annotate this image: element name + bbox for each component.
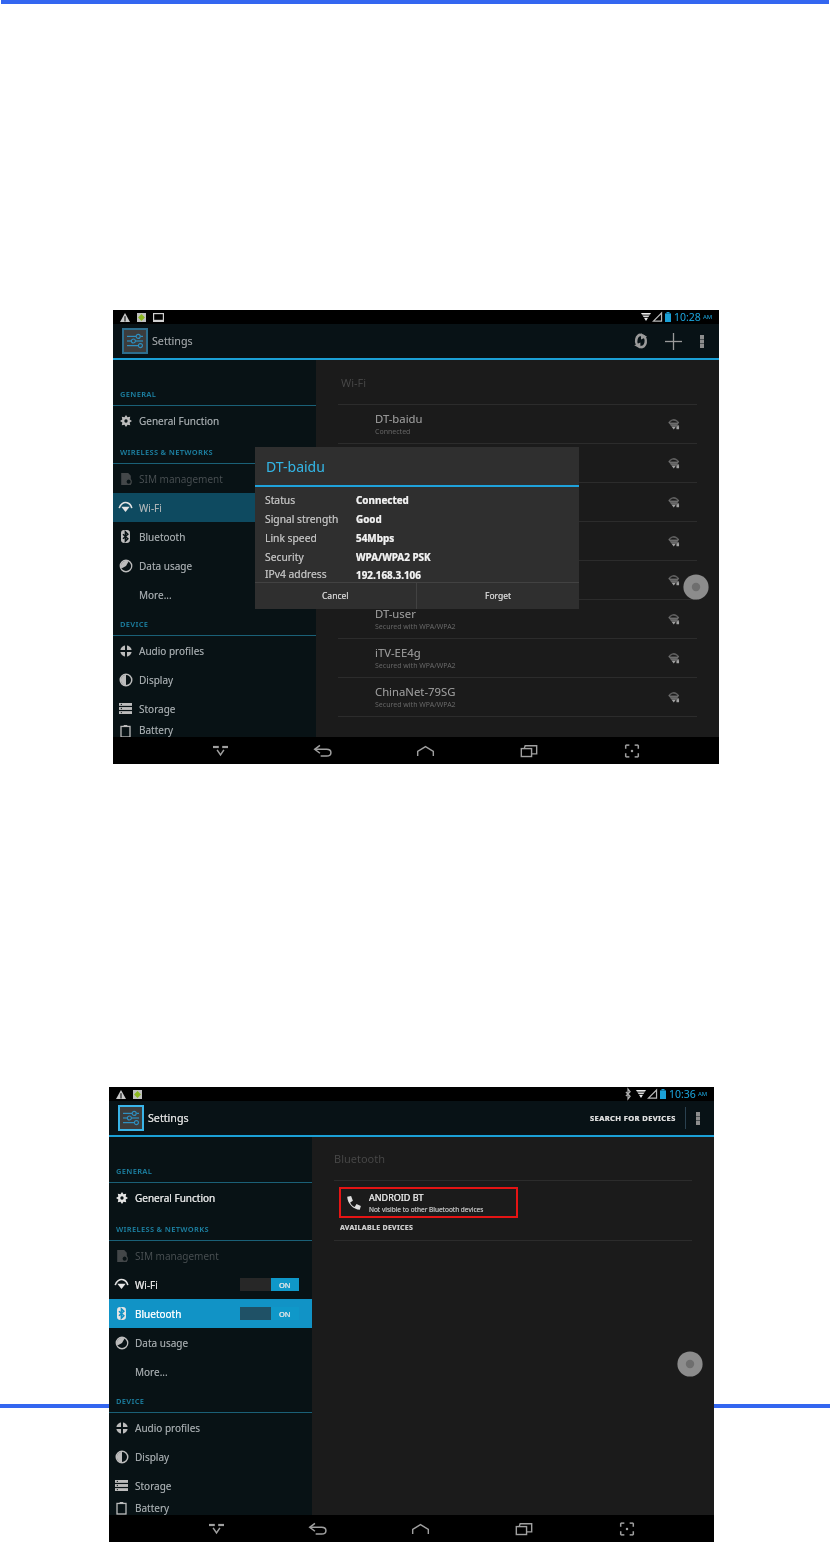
button[interactable]: Battery bbox=[109, 1500, 312, 1515]
staticText: Settings bbox=[152, 334, 193, 349]
button[interactable]: TP-LINK_5E2A bbox=[316, 483, 719, 521]
button[interactable]: ON bbox=[240, 1278, 299, 1291]
staticText: Good bbox=[356, 512, 382, 525]
staticText: ANDROID BT bbox=[369, 1191, 424, 1203]
staticText: Audio profiles bbox=[139, 644, 205, 658]
staticText: Connected bbox=[375, 427, 411, 437]
button[interactable]: Audio profiles bbox=[109, 1413, 312, 1442]
button[interactable]: DT-baidu bbox=[316, 405, 719, 443]
staticText: SEARCH FOR DEVICES bbox=[590, 1113, 676, 1123]
staticText: Wi-Fi bbox=[139, 501, 162, 515]
staticText: AM bbox=[703, 313, 713, 321]
staticText: ChinaNet-EE4g bbox=[375, 567, 454, 582]
staticText: ON bbox=[279, 1309, 291, 1319]
staticText: WPA/WPA2 PSK bbox=[356, 550, 431, 563]
staticText: Signal strength bbox=[265, 512, 339, 526]
staticText: 10:28 bbox=[674, 310, 701, 324]
staticText: 192.168.3.106 bbox=[356, 568, 421, 581]
button[interactable]: Back bbox=[271, 737, 374, 764]
staticText: Bluetooth bbox=[334, 1151, 386, 1166]
staticText: Data usage bbox=[135, 1336, 189, 1350]
button[interactable]: iTV-EE4g bbox=[316, 639, 719, 677]
button[interactable]: Add network bbox=[656, 324, 690, 358]
button[interactable]: ON bbox=[240, 1307, 299, 1320]
button[interactable]: ANDROID BT bbox=[339, 1187, 518, 1218]
button[interactable]: Wi-Fi bbox=[113, 493, 316, 522]
button[interactable]: More options bbox=[686, 1101, 710, 1135]
staticText: GENERAL bbox=[120, 389, 157, 399]
staticText: SIM management bbox=[135, 1249, 219, 1263]
staticText: Status bbox=[265, 493, 296, 507]
staticText: Secured with WPA/WPA2 bbox=[375, 544, 456, 554]
button[interactable]: DT-user bbox=[316, 600, 719, 638]
button[interactable]: Wi-Fi bbox=[109, 1270, 312, 1299]
staticText: Security bbox=[265, 550, 304, 564]
button[interactable]: General Function bbox=[113, 406, 316, 435]
button[interactable]: Home bbox=[369, 1515, 472, 1542]
staticText: iTV-EE4g bbox=[375, 645, 421, 660]
button[interactable]: Back bbox=[267, 1515, 369, 1542]
staticText: SIM management bbox=[139, 472, 223, 486]
button[interactable]: Data usage bbox=[113, 551, 316, 580]
staticText: 54Mbps bbox=[356, 531, 395, 544]
staticText: General Function bbox=[135, 1191, 216, 1205]
staticText: 10:36 bbox=[669, 1087, 696, 1101]
button[interactable]: Storage bbox=[109, 1471, 312, 1500]
staticText: Secured with WPA/WPA2 bbox=[375, 661, 456, 671]
button[interactable]: Hide navigation bbox=[169, 737, 271, 764]
button[interactable]: Display bbox=[109, 1442, 312, 1471]
staticText: Battery bbox=[135, 1501, 170, 1515]
button[interactable]: More options bbox=[690, 324, 714, 358]
staticText: Wi-Fi bbox=[341, 375, 367, 390]
button[interactable]: Battery bbox=[113, 723, 316, 737]
staticText: Data usage bbox=[139, 559, 193, 573]
staticText: Secured with WPA/WPA2 bbox=[375, 700, 456, 710]
staticText: Battery bbox=[139, 723, 174, 737]
staticText: ON bbox=[279, 1280, 291, 1290]
button[interactable]: Screenshot bbox=[575, 1515, 678, 1542]
button[interactable]: CMCC-Auto bbox=[316, 522, 719, 560]
button[interactable]: More... bbox=[109, 1357, 312, 1386]
staticText: Bluetooth bbox=[135, 1307, 182, 1321]
button[interactable]: Display bbox=[113, 665, 316, 694]
button[interactable]: Bluetooth bbox=[113, 522, 316, 551]
staticText: Audio profiles bbox=[135, 1421, 201, 1435]
staticText: Storage bbox=[139, 702, 176, 716]
button[interactable]: SEARCH FOR DEVICES bbox=[581, 1104, 685, 1132]
staticText: WIRELESS & NETWORKS bbox=[116, 1224, 209, 1234]
button[interactable]: More... bbox=[113, 580, 316, 609]
button[interactable]: General Function bbox=[109, 1183, 312, 1212]
button[interactable] bbox=[275, 501, 315, 514]
staticText: Settings bbox=[148, 1111, 189, 1126]
button[interactable]: ChinaNet-2G bbox=[316, 444, 719, 482]
button[interactable]: Screenshot bbox=[580, 737, 683, 764]
button[interactable]: Forget bbox=[417, 583, 579, 609]
staticText: DT-user bbox=[375, 606, 416, 621]
button[interactable]: SIM management bbox=[113, 464, 316, 493]
button[interactable]: ChinaNet-EE4g bbox=[316, 561, 719, 599]
button[interactable]: Hide navigation bbox=[165, 1515, 267, 1542]
staticText: Forget bbox=[485, 590, 512, 602]
button[interactable]: ChinaNet-79SG bbox=[316, 678, 719, 716]
button[interactable]: Recent apps bbox=[477, 737, 580, 764]
button[interactable]: Home bbox=[374, 737, 477, 764]
staticText: IPv4 address bbox=[265, 567, 327, 581]
button[interactable]: Cancel bbox=[255, 583, 416, 609]
staticText: DT-baidu bbox=[266, 457, 325, 476]
button[interactable]: Storage bbox=[113, 694, 316, 723]
staticText: WIRELESS & NETWORKS bbox=[120, 447, 213, 457]
button[interactable]: SIM management bbox=[109, 1241, 312, 1270]
button[interactable]: Data usage bbox=[109, 1328, 312, 1357]
button[interactable]: Bluetooth bbox=[109, 1299, 312, 1328]
staticText: AM bbox=[698, 1090, 708, 1098]
staticText: Display bbox=[135, 1450, 170, 1464]
button[interactable]: Audio profiles bbox=[113, 636, 316, 665]
button[interactable] bbox=[275, 530, 315, 543]
staticText: More... bbox=[135, 1365, 168, 1379]
button[interactable]: Scan bbox=[626, 324, 656, 358]
staticText: Link speed bbox=[265, 531, 317, 545]
button[interactable]: Recent apps bbox=[472, 1515, 575, 1542]
